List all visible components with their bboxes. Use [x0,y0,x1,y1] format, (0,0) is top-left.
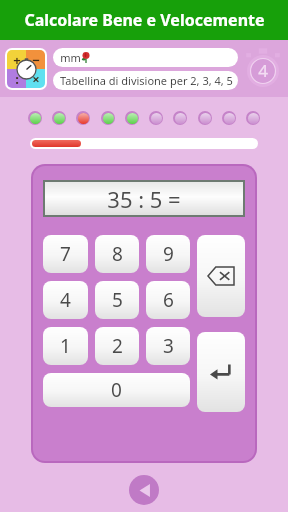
staticText: 4 [60,287,71,313]
staticText: 35 : 5 = [107,184,181,214]
button[interactable]: App icon [7,50,45,88]
button[interactable]: Enter [197,332,245,412]
button[interactable]: 6 [146,281,190,319]
staticText: 1 [60,333,71,359]
button[interactable]: 5 [95,281,139,319]
staticText: : [15,70,19,88]
staticText: 0 [111,377,122,403]
staticText: Tabellina di divisione per 2, 3, 4, 5 [60,73,233,88]
staticText: + [13,51,21,69]
button[interactable]: 3 [146,327,190,365]
staticText: 9 [163,241,174,267]
button[interactable]: 7 [43,235,88,273]
staticText: − [32,51,40,69]
staticText: 6 [163,287,174,313]
staticText: 8 [112,241,123,267]
staticText: 3 [163,333,174,359]
staticText: 2 [112,333,123,359]
staticText: × [32,70,40,88]
button[interactable]: 1 [43,327,88,365]
staticText: Calcolare Bene e Velocemente [24,9,265,31]
button[interactable]: Zero [43,373,190,407]
button[interactable]: 4 [43,281,88,319]
button[interactable]: Back [129,475,159,505]
button[interactable]: 2 [95,327,139,365]
staticText: 7 [60,241,71,267]
button[interactable]: 9 [146,235,190,273]
staticText: 5 [112,287,123,313]
staticText: mm [60,50,81,65]
button[interactable]: Timer [243,49,283,89]
staticText: 4 [258,59,268,82]
button[interactable]: Backspace [197,235,245,317]
button[interactable]: 8 [95,235,139,273]
